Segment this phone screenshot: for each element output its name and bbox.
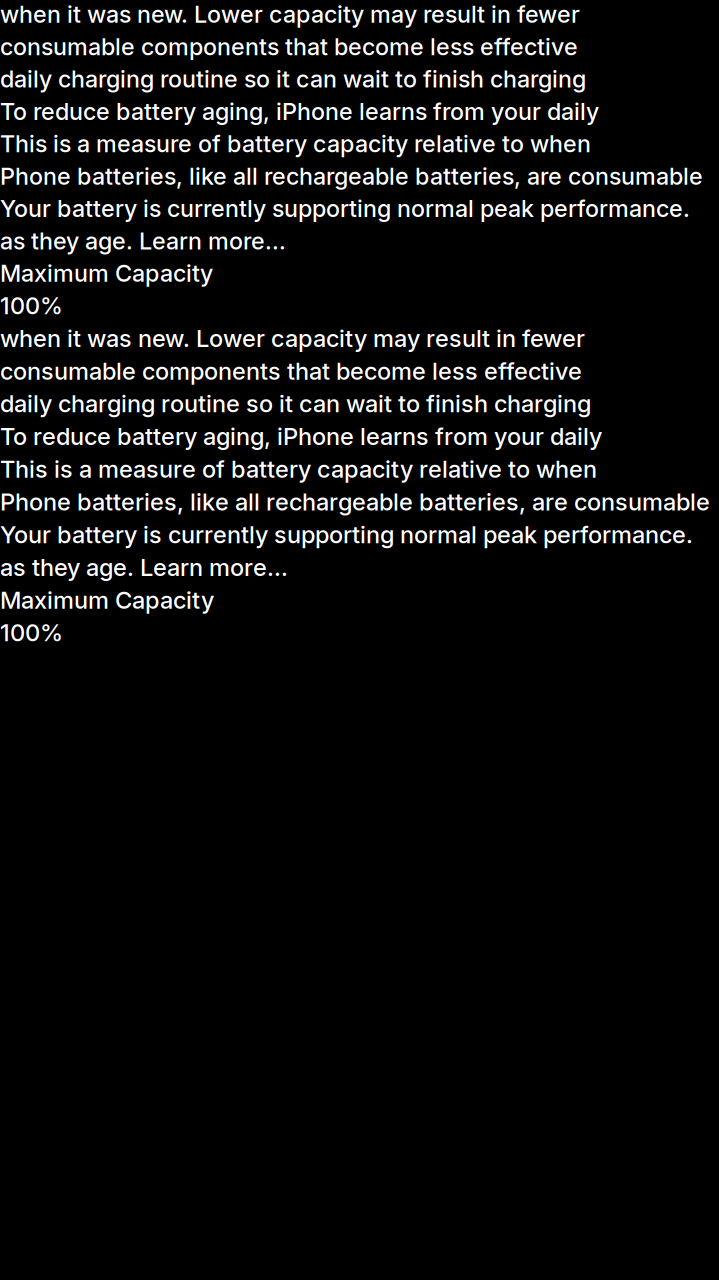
staticText: consumable components that become less e… <box>0 357 582 385</box>
staticText: This is a measure of battery capacity re… <box>0 455 597 483</box>
staticText: as they age. Learn more... <box>0 227 286 255</box>
staticText: Maximum Capacity <box>0 259 213 287</box>
staticText: Maximum Capacity <box>0 586 214 614</box>
staticText: daily charging routine so it can wait to… <box>0 389 591 418</box>
staticText: consumable components that become less e… <box>0 32 578 61</box>
staticText: To reduce battery aging, iPhone learns f… <box>0 97 599 126</box>
staticText: 100% <box>0 618 63 647</box>
staticText: This is a measure of battery capacity re… <box>0 130 591 158</box>
staticText: Your battery is currently supporting nor… <box>0 520 693 549</box>
staticText: when it was new. Lower capacity may resu… <box>0 324 585 353</box>
staticText: Phone batteries, like all rechargeable b… <box>0 162 703 190</box>
staticText: To reduce battery aging, iPhone learns f… <box>0 422 602 451</box>
staticText: 100% <box>0 291 63 320</box>
staticText: when it was new. Lower capacity may resu… <box>0 0 580 28</box>
staticText: as they age. Learn more... <box>0 553 288 582</box>
staticText: daily charging routine so it can wait to… <box>0 65 586 93</box>
staticText: Phone batteries, like all rechargeable b… <box>0 487 710 516</box>
staticText: Your battery is currently supporting nor… <box>0 194 690 223</box>
